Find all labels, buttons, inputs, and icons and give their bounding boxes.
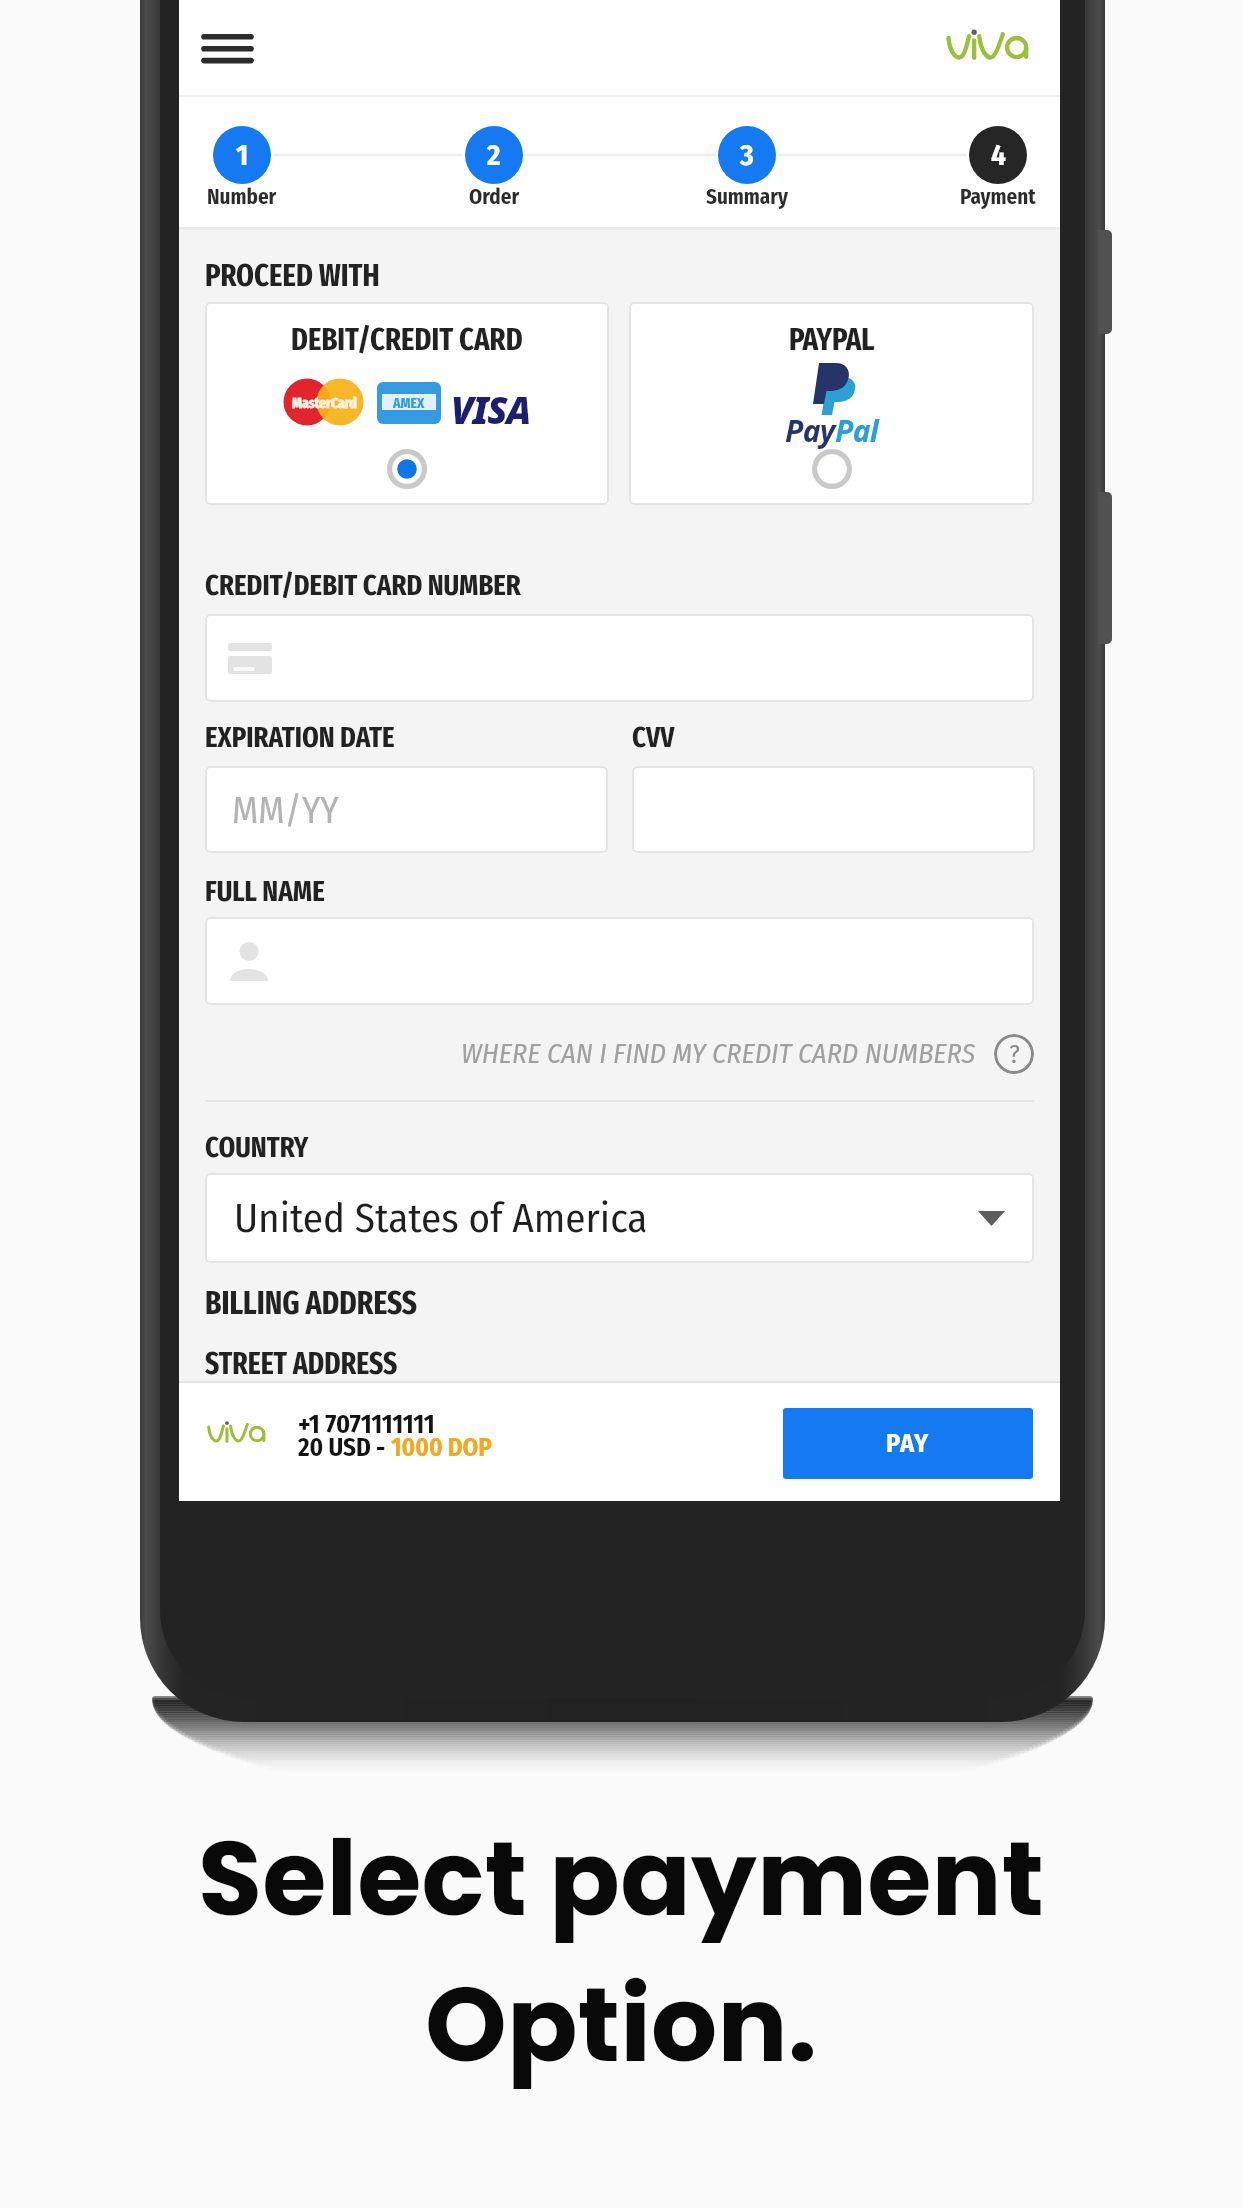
button[interactable]: Open navigation menu xyxy=(191,12,263,84)
staticText: CREDIT/DEBIT CARD NUMBER xyxy=(205,568,521,603)
staticText: Payment xyxy=(960,184,1036,209)
staticText: PAY xyxy=(886,1428,930,1459)
button[interactable]: PAYPAL xyxy=(629,302,1034,505)
button[interactable]: 3 xyxy=(637,97,857,223)
staticText: United States of America xyxy=(234,1194,648,1243)
button[interactable]: WHERE CAN I FIND MY CREDIT CARD NUMBERS xyxy=(205,1032,1034,1076)
button[interactable]: 1 xyxy=(132,97,352,223)
staticText: MasterCard xyxy=(292,394,357,412)
button[interactable]: MM/YY xyxy=(205,766,608,853)
staticText: COUNTRY xyxy=(205,1130,309,1165)
staticText: PROCEED WITH xyxy=(205,257,380,294)
button[interactable]: United States of America xyxy=(205,1173,1034,1263)
staticText: 4 xyxy=(991,138,1006,173)
staticText: 2 xyxy=(487,138,501,173)
staticText: 1 xyxy=(236,138,249,173)
staticText: Option. xyxy=(425,1952,818,2098)
staticText: Summary xyxy=(706,184,788,209)
button[interactable] xyxy=(632,766,1035,853)
button[interactable]: 4 xyxy=(888,97,1108,223)
staticText: 20 USD - xyxy=(298,1433,391,1463)
staticText: STREET ADDRESS xyxy=(205,1346,398,1382)
staticText: FULL NAME xyxy=(205,874,325,909)
staticText: Pay xyxy=(785,410,835,451)
staticText: Select payment xyxy=(198,1806,1045,1952)
staticText: Pal xyxy=(835,410,879,451)
staticText: 1000 DOP xyxy=(391,1433,492,1463)
staticText: ? xyxy=(1009,1039,1020,1070)
staticText: AMEX xyxy=(393,394,425,410)
staticText: PAYPAL xyxy=(789,321,875,358)
button[interactable] xyxy=(205,614,1034,702)
staticText: DEBIT/CREDIT CARD xyxy=(291,321,523,358)
staticText: Order xyxy=(469,184,520,209)
staticText: Number xyxy=(207,184,277,209)
staticText: 3 xyxy=(740,138,754,173)
button[interactable] xyxy=(205,917,1034,1005)
staticText: +1 7071111111 xyxy=(298,1409,435,1440)
staticText: MM/YY xyxy=(232,788,339,832)
staticText: EXPIRATION DATE xyxy=(205,720,395,755)
staticText: BILLING ADDRESS xyxy=(205,1284,418,1322)
button[interactable]: DEBIT/CREDIT CARD xyxy=(205,302,609,505)
staticText: CVV xyxy=(632,720,675,755)
staticText: WHERE CAN I FIND MY CREDIT CARD NUMBERS xyxy=(461,1037,976,1071)
button[interactable]: 2 xyxy=(384,97,604,223)
button[interactable]: PAY xyxy=(783,1408,1033,1479)
staticText: VISA xyxy=(451,384,531,432)
